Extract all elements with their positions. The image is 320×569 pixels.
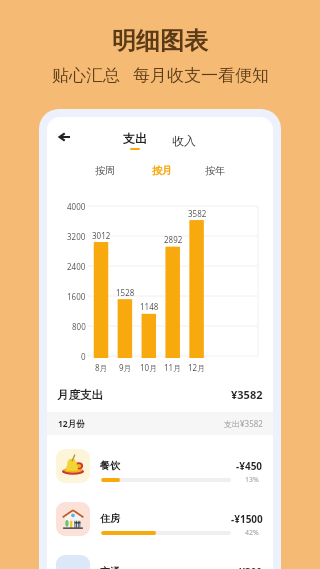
staticText: 2892 [164, 234, 183, 245]
button[interactable]: 按周 [91, 161, 119, 179]
staticText: 明细图表 [112, 26, 208, 56]
staticText: ¥3582 [231, 387, 263, 402]
staticText: 800 [72, 321, 86, 332]
button[interactable]: 按月 [148, 161, 176, 179]
button[interactable]: Back [53, 126, 75, 148]
staticText: 月度支出 [57, 388, 103, 402]
staticText: 1600 [67, 291, 86, 302]
button[interactable]: 收入 [172, 133, 196, 148]
staticText: 餐饮 [100, 459, 120, 472]
button[interactable]: 住房 [47, 494, 273, 547]
staticText: 2400 [67, 261, 86, 272]
staticText: 42% [245, 528, 259, 538]
staticText: 12月份 [58, 418, 85, 430]
staticText: 11月 [164, 362, 182, 373]
staticText: 1528 [116, 287, 135, 298]
staticText: 按月 [152, 164, 172, 177]
button[interactable]: 交通 [47, 547, 273, 569]
staticText: -¥450 [236, 459, 263, 473]
staticText: 支出¥3582 [224, 418, 263, 429]
staticText: 1148 [140, 301, 159, 312]
staticText: -¥1500 [231, 512, 263, 526]
staticText: 13% [245, 475, 259, 485]
staticText: 收入 [172, 133, 196, 148]
staticText: 0 [81, 351, 86, 362]
staticText: 按周 [95, 164, 115, 177]
staticText: 住房 [100, 512, 120, 525]
button[interactable]: 支出 [123, 131, 147, 150]
staticText: 交通 [100, 565, 120, 569]
staticText: 3012 [92, 230, 111, 241]
staticText: 4000 [67, 201, 86, 212]
staticText: 3582 [188, 208, 207, 219]
staticText: 12月 [188, 362, 206, 373]
staticText: 3200 [67, 231, 86, 242]
button[interactable]: 按年 [201, 161, 229, 179]
staticText: 8月 [95, 362, 108, 373]
staticText: 支出 [123, 131, 147, 146]
staticText: -¥300 [236, 565, 263, 569]
button[interactable]: 餐饮 [47, 441, 273, 494]
staticText: 9月 [119, 362, 132, 373]
staticText: 10月 [140, 362, 158, 373]
staticText: 贴心汇总 每月收支一看便知 [52, 63, 269, 86]
staticText: 按年 [205, 164, 225, 177]
button[interactable]: 月度支出 [47, 382, 273, 407]
